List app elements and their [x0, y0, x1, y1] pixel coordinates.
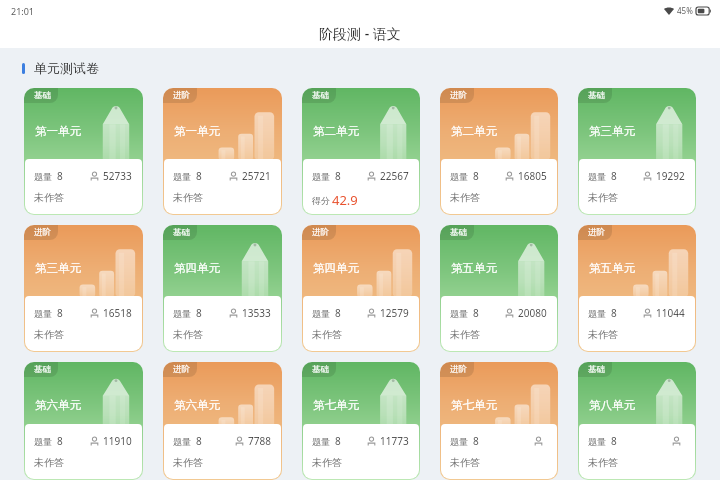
staticText: 22567 — [380, 169, 409, 183]
staticText: 进阶 — [450, 90, 467, 101]
staticText: 题量 — [34, 308, 52, 319]
staticText: 16805 — [518, 169, 547, 183]
staticText: 20080 — [518, 306, 547, 320]
staticText: 题量 — [588, 436, 606, 447]
staticText: 基础 — [173, 227, 190, 238]
staticText: 8 — [611, 169, 617, 183]
staticText: 45% — [677, 5, 693, 16]
staticText: 8 — [335, 169, 341, 183]
staticText: 进阶 — [173, 90, 190, 101]
staticText: 单元测试卷 — [34, 60, 99, 76]
staticText: 题量 — [312, 436, 330, 447]
staticText: 8 — [335, 306, 341, 320]
staticText: 未作答 — [173, 456, 203, 469]
staticText: 基础 — [588, 364, 605, 375]
staticText: 未作答 — [450, 191, 480, 204]
staticText: 8 — [473, 434, 479, 448]
staticText: 进阶 — [588, 227, 605, 238]
button[interactable]: 进阶 — [440, 88, 558, 215]
button[interactable]: 基础 — [578, 88, 696, 215]
staticText: 未作答 — [34, 456, 64, 469]
staticText: 基础 — [34, 90, 51, 101]
staticText: 未作答 — [312, 328, 342, 341]
button[interactable]: 基础 — [24, 362, 143, 480]
staticText: 第六单元 — [35, 398, 81, 412]
staticText: 11044 — [656, 306, 685, 320]
staticText: 未作答 — [588, 456, 618, 469]
staticText: 未作答 — [588, 328, 618, 341]
staticText: 52733 — [103, 169, 132, 183]
staticText: 第五单元 — [451, 261, 497, 275]
button[interactable]: 进阶 — [302, 225, 420, 352]
staticText: 7788 — [248, 434, 271, 448]
staticText: 未作答 — [450, 456, 480, 469]
staticText: 第三单元 — [589, 124, 635, 138]
staticText: 未作答 — [34, 328, 64, 341]
staticText: 第一单元 — [174, 124, 220, 138]
staticText: 8 — [611, 306, 617, 320]
staticText: 11910 — [103, 434, 132, 448]
staticText: 16518 — [103, 306, 132, 320]
staticText: 题量 — [173, 436, 191, 447]
staticText: 未作答 — [312, 456, 342, 469]
staticText: 未作答 — [34, 191, 64, 204]
staticText: 基础 — [34, 364, 51, 375]
staticText: 第一单元 — [35, 124, 81, 138]
button[interactable]: 基础 — [24, 88, 143, 215]
button[interactable]: 进阶 — [440, 362, 558, 480]
staticText: 8 — [473, 306, 479, 320]
button[interactable]: 基础 — [163, 225, 282, 352]
staticText: 第五单元 — [589, 261, 635, 275]
staticText: 8 — [196, 306, 202, 320]
staticText: 未作答 — [173, 328, 203, 341]
staticText: 第二单元 — [451, 124, 497, 138]
staticText: 进阶 — [450, 364, 467, 375]
staticText: 8 — [473, 169, 479, 183]
staticText: 8 — [57, 434, 63, 448]
staticText: 题量 — [450, 171, 468, 182]
staticText: 第七单元 — [451, 398, 497, 412]
button[interactable]: 基础 — [578, 362, 696, 480]
staticText: 基础 — [588, 90, 605, 101]
staticText: 题量 — [34, 171, 52, 182]
staticText: 基础 — [312, 364, 329, 375]
staticText: 进阶 — [34, 227, 51, 238]
staticText: 阶段测 - 语文 — [319, 24, 401, 43]
staticText: 题量 — [588, 171, 606, 182]
staticText: 8 — [57, 306, 63, 320]
staticText: 第八单元 — [589, 398, 635, 412]
staticText: 题量 — [312, 171, 330, 182]
staticText: 42.9 — [332, 191, 358, 209]
button[interactable]: 进阶 — [163, 88, 282, 215]
staticText: 8 — [57, 169, 63, 183]
staticText: 19292 — [656, 169, 685, 183]
staticText: 第三单元 — [35, 261, 81, 275]
button[interactable]: 进阶 — [24, 225, 143, 352]
staticText: 题量 — [312, 308, 330, 319]
staticText: 基础 — [450, 227, 467, 238]
staticText: 8 — [335, 434, 341, 448]
staticText: 题量 — [450, 436, 468, 447]
staticText: 第四单元 — [313, 261, 359, 275]
staticText: 题量 — [588, 308, 606, 319]
staticText: 第四单元 — [174, 261, 220, 275]
staticText: 11773 — [380, 434, 409, 448]
staticText: 题量 — [173, 308, 191, 319]
staticText: 25721 — [242, 169, 271, 183]
staticText: 得分 — [312, 195, 330, 206]
staticText: 进阶 — [173, 364, 190, 375]
staticText: 题量 — [173, 171, 191, 182]
staticText: 21:01 — [11, 5, 35, 17]
staticText: 12579 — [380, 306, 409, 320]
button[interactable]: 进阶 — [578, 225, 696, 352]
staticText: 8 — [196, 434, 202, 448]
button[interactable]: 基础 — [302, 88, 420, 215]
staticText: 进阶 — [312, 227, 329, 238]
button[interactable]: 基础 — [440, 225, 558, 352]
staticText: 基础 — [312, 90, 329, 101]
button[interactable]: 基础 — [302, 362, 420, 480]
staticText: 第二单元 — [313, 124, 359, 138]
staticText: 13533 — [242, 306, 271, 320]
button[interactable]: 进阶 — [163, 362, 282, 480]
staticText: 8 — [611, 434, 617, 448]
